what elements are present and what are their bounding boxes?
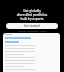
button[interactable]: Already a member? Log in	[18, 30, 47, 33]
staticText: Get started	[24, 24, 40, 28]
staticText: Get globally diversified portfolios buil…	[1, 9, 63, 21]
button[interactable]: Get started	[6, 23, 58, 29]
staticText: Already a member? Log in	[18, 30, 47, 33]
